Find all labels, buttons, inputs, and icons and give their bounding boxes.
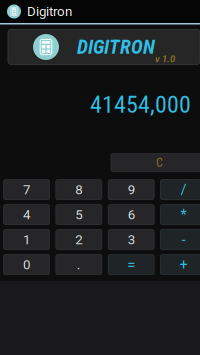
staticText: Digitron [27,4,72,19]
staticText: 5 [75,207,82,222]
staticText: 6 [128,207,135,222]
staticText: 1 [23,232,30,247]
staticText: 9 [128,182,135,197]
button[interactable]: * [160,205,200,225]
button[interactable]: 0 [3,255,49,275]
staticText: v 1.0 [155,54,175,64]
button[interactable]: 5 [56,205,102,225]
staticText: 3 [128,232,135,247]
staticText: 41454,000 [90,90,191,119]
button[interactable]: / [160,180,200,200]
staticText: + [179,256,187,273]
button[interactable]: 6 [108,205,154,225]
staticText: 7 [23,182,30,197]
button[interactable]: 4 [3,205,49,225]
staticText: - [181,231,185,248]
button[interactable]: 8 [56,180,102,200]
staticText: . [77,257,81,272]
staticText: 0 [23,257,30,272]
button[interactable]: - [160,230,200,250]
button[interactable]: 2 [56,230,102,250]
staticText: DIGITRON [77,35,155,59]
button[interactable]: 9 [108,180,154,200]
button[interactable]: 3 [108,230,154,250]
staticText: 2 [75,232,82,247]
button[interactable]: 7 [3,180,49,200]
button[interactable]: = [108,255,154,275]
staticText: / [180,181,186,198]
staticText: 8 [75,182,82,197]
button[interactable]: . [56,255,102,275]
staticText: = [127,256,135,273]
button[interactable]: C [111,154,200,172]
staticText: C [156,156,163,170]
staticText: * [180,206,186,223]
button[interactable]: + [160,255,200,275]
button[interactable]: 1 [3,230,49,250]
staticText: 4 [23,207,30,222]
